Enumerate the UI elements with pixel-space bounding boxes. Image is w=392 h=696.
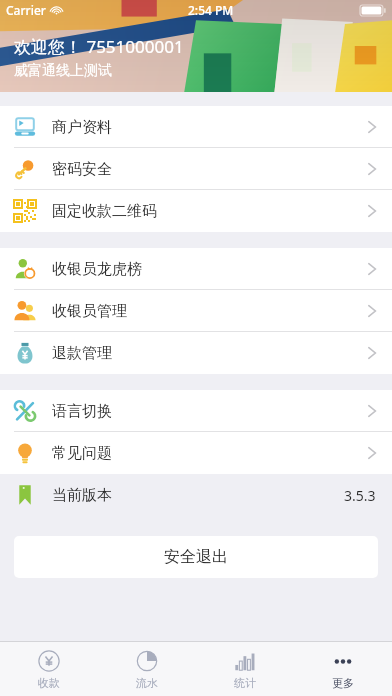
staticText: 3.5.3 (344, 486, 376, 505)
button[interactable]: 流水 (98, 642, 196, 696)
button[interactable]: 安全退出 (14, 536, 378, 578)
staticText: 常见问题 (52, 444, 112, 463)
button[interactable]: 当前版本 (0, 474, 392, 516)
staticText: 威富通线上测试 (14, 62, 112, 80)
staticText: Carrier (6, 2, 46, 18)
staticText: 商户资料 (52, 118, 112, 137)
button[interactable]: 语言切换 (0, 390, 392, 432)
staticText: 收银员龙虎榜 (52, 260, 142, 279)
staticText: 欢迎您！ 7551000001 (14, 35, 184, 58)
button[interactable]: 固定收款二维码 (0, 190, 392, 232)
button[interactable]: 商户资料 (0, 106, 392, 148)
staticText: 流水 (136, 676, 158, 690)
staticText: 密码安全 (52, 160, 112, 179)
button[interactable]: 收银员龙虎榜 (0, 248, 392, 290)
staticText: 退款管理 (52, 344, 112, 363)
staticText: 当前版本 (52, 486, 112, 505)
button[interactable]: 收银员管理 (0, 290, 392, 332)
staticText: 安全退出 (164, 547, 228, 567)
button[interactable]: 更多 (294, 642, 392, 696)
staticText: 固定收款二维码 (52, 202, 157, 221)
button[interactable]: 退款管理 (0, 332, 392, 374)
staticText: 2:54 PM (188, 2, 234, 18)
staticText: 语言切换 (52, 402, 112, 421)
button[interactable]: 收款 (0, 642, 98, 696)
staticText: 收款 (38, 676, 60, 690)
button[interactable]: 密码安全 (0, 148, 392, 190)
staticText: 更多 (332, 676, 354, 690)
staticText: 收银员管理 (52, 302, 127, 321)
button[interactable]: 统计 (196, 642, 294, 696)
button[interactable]: 常见问题 (0, 432, 392, 474)
staticText: 统计 (234, 676, 256, 690)
